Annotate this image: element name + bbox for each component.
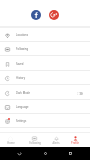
- button[interactable]: Following: [0, 42, 90, 56]
- staticText: Profile: [71, 141, 79, 145]
- button[interactable]: Dark Mode toggle: [77, 92, 83, 95]
- other: Recents: [68, 151, 73, 156]
- button[interactable]: Sign in with Google: [49, 10, 59, 20]
- staticText: Alerts: [52, 141, 60, 145]
- button[interactable]: Locations: [0, 28, 90, 42]
- button[interactable]: Saved: [0, 57, 90, 71]
- other: Home: [43, 151, 48, 156]
- button[interactable]: History: [0, 71, 90, 85]
- staticText: Saved: [16, 62, 24, 66]
- button[interactable]: Dark Mode: [0, 86, 90, 100]
- staticText: History: [16, 76, 26, 80]
- other: Back: [17, 151, 22, 156]
- button[interactable]: Settings: [0, 114, 90, 128]
- staticText: Locations: [16, 33, 29, 37]
- button[interactable]: Alerts: [48, 133, 64, 147]
- staticText: Settings: [16, 119, 27, 123]
- staticText: Following: [16, 47, 29, 51]
- staticText: Language: [16, 105, 29, 109]
- button[interactable]: Sign in with Facebook: [31, 10, 41, 20]
- staticText: Following: [29, 141, 41, 145]
- button[interactable]: Profile: [64, 133, 86, 147]
- button[interactable]: Following: [21, 133, 48, 147]
- staticText: Dark Mode: [16, 91, 30, 95]
- button[interactable]: Language: [0, 100, 90, 114]
- button[interactable]: Home: [0, 133, 21, 147]
- staticText: Home: [7, 141, 15, 145]
